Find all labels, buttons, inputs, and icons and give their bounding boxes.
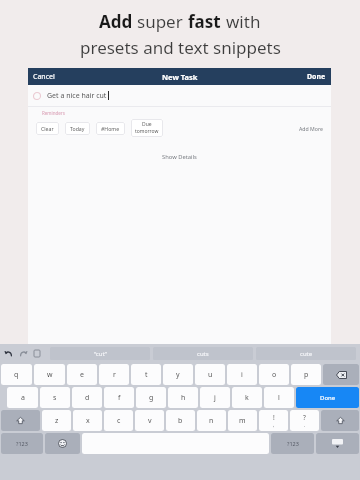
button[interactable]: d [72, 387, 102, 408]
staticText: k [245, 393, 249, 403]
staticText: p [304, 370, 309, 380]
button[interactable]: Hide keyboard [316, 433, 359, 454]
button[interactable]: Emoji [45, 433, 80, 454]
staticText: Clear [41, 125, 54, 132]
button[interactable]: Today [65, 122, 90, 135]
staticText: o [272, 370, 277, 380]
staticText: b [178, 416, 183, 426]
button[interactable]: ?123 [1, 433, 43, 454]
button[interactable]: Paste [30, 346, 44, 360]
button[interactable]: Clear [36, 122, 59, 135]
button[interactable]: “cut” [50, 347, 150, 360]
button[interactable]: f [104, 387, 134, 408]
staticText: super [137, 10, 188, 33]
staticText: Done [320, 394, 336, 402]
staticText: with [226, 10, 261, 33]
button[interactable]: Done [296, 387, 359, 408]
button[interactable]: p [291, 364, 321, 385]
staticText: Reminders [42, 110, 65, 116]
staticText: s [53, 393, 57, 403]
button[interactable]: cute [256, 347, 356, 360]
button[interactable]: Add More [296, 122, 326, 135]
staticText: y [176, 370, 180, 380]
staticText: New Task [162, 72, 198, 82]
button[interactable]: Redo [16, 346, 30, 360]
staticText: t [145, 370, 148, 380]
staticText: x [86, 416, 90, 426]
button[interactable]: z [42, 410, 71, 431]
staticText: Today [70, 125, 85, 132]
button[interactable]: v [135, 410, 164, 431]
button[interactable]: k [232, 387, 262, 408]
button[interactable]: Undo [2, 346, 16, 360]
staticText: Cancel [33, 72, 55, 82]
button[interactable]: n [197, 410, 226, 431]
staticText: fast [188, 10, 226, 33]
button[interactable]: r [99, 364, 129, 385]
staticText: d [85, 393, 90, 403]
button[interactable]: #Home [96, 122, 125, 135]
staticText: #Home [101, 125, 120, 132]
staticText: Add More [299, 125, 323, 132]
button[interactable]: ? [290, 410, 319, 431]
button[interactable]: t [131, 364, 161, 385]
button[interactable]: l [264, 387, 294, 408]
staticText: e [80, 370, 84, 380]
staticText: ! [273, 413, 275, 422]
button[interactable]: h [168, 387, 198, 408]
button[interactable]: Done [302, 70, 331, 84]
button[interactable]: m [228, 410, 257, 431]
staticText: z [55, 416, 59, 426]
staticText: m [239, 416, 246, 426]
button[interactable]: Shift [1, 410, 40, 431]
staticText: Add [99, 10, 137, 33]
button[interactable]: u [195, 364, 225, 385]
button[interactable]: x [73, 410, 102, 431]
button[interactable]: Cancel [28, 70, 60, 84]
staticText: cute [300, 350, 313, 358]
button[interactable]: s [40, 387, 70, 408]
staticText: “cut” [94, 350, 107, 358]
staticText: n [209, 416, 214, 426]
button[interactable]: cuts [153, 347, 253, 360]
staticText: , [273, 422, 275, 429]
staticText: i [241, 370, 243, 380]
staticText: h [181, 393, 186, 403]
staticText: Show Details [162, 153, 197, 161]
other: Complete task [33, 92, 41, 100]
staticText: cuts [197, 350, 209, 358]
button[interactable]: b [166, 410, 195, 431]
staticText: ?123 [16, 440, 28, 447]
staticText: g [149, 393, 154, 403]
button[interactable]: c [104, 410, 133, 431]
staticText: q [14, 370, 19, 380]
button[interactable]: e [67, 364, 97, 385]
button[interactable]: ?123 [271, 433, 314, 454]
staticText: tomorrow [135, 128, 159, 135]
button[interactable]: g [136, 387, 166, 408]
staticText: a [21, 393, 25, 403]
button[interactable]: q [1, 364, 32, 385]
button[interactable]: a [7, 387, 38, 408]
button[interactable]: i [227, 364, 257, 385]
button[interactable]: ! [259, 410, 288, 431]
button[interactable]: j [200, 387, 230, 408]
staticText: . [304, 422, 306, 429]
button[interactable]: Due [131, 119, 163, 137]
button[interactable]: Shift [321, 410, 359, 431]
staticText: u [208, 370, 213, 380]
staticText: r [113, 370, 116, 380]
staticText: Due [142, 121, 152, 128]
staticText: l [278, 393, 280, 403]
button[interactable]: Show Details [156, 150, 203, 164]
staticText: f [118, 393, 121, 403]
button[interactable]: o [259, 364, 289, 385]
button[interactable]: w [34, 364, 65, 385]
button[interactable]: Backspace [323, 364, 359, 385]
staticText: ? [303, 413, 306, 422]
staticText: v [148, 416, 152, 426]
button[interactable]: y [163, 364, 193, 385]
staticText: j [214, 393, 216, 403]
staticText: w [47, 370, 53, 380]
